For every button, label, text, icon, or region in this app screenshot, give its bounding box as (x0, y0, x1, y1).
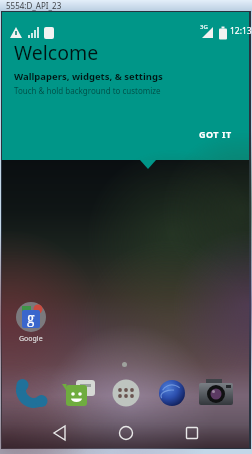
button[interactable] (155, 376, 189, 410)
button[interactable] (112, 419, 140, 447)
staticText: 5554:D_API_23 (6, 0, 62, 11)
staticText: GOT IT (199, 128, 232, 140)
button[interactable] (109, 376, 143, 410)
button[interactable] (16, 376, 50, 410)
button[interactable]: g (14, 300, 48, 334)
staticText: Touch & hold background to customize (14, 85, 161, 96)
staticText: Welcome (14, 39, 99, 66)
button[interactable]: GOT IT (186, 122, 244, 146)
staticText: Google (19, 334, 43, 344)
button[interactable] (197, 376, 235, 410)
button[interactable] (63, 376, 97, 410)
staticText: 12:13 (230, 25, 252, 37)
staticText: 3G (200, 23, 208, 31)
button[interactable] (178, 419, 206, 447)
staticText: Wallpapers, widgets, & settings (14, 70, 163, 83)
staticText: g (27, 308, 35, 327)
button[interactable] (46, 419, 74, 447)
